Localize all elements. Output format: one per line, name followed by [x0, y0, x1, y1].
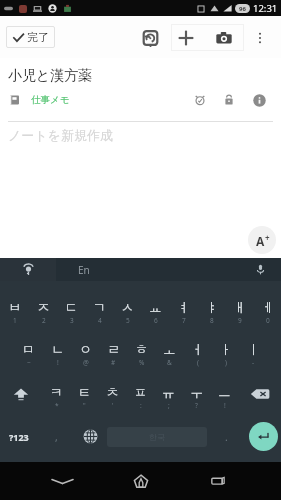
staticText: 2 — [42, 316, 46, 325]
button[interactable]: ㅗ — [155, 330, 183, 372]
staticText: ㅁ — [22, 341, 35, 357]
button[interactable]: ㅈ — [29, 288, 57, 330]
staticText: 5 — [126, 316, 130, 325]
staticText: + — [265, 232, 270, 243]
staticText: ㄷ — [65, 299, 78, 315]
staticText: ㅡ — [218, 384, 231, 400]
staticText: ㅐ — [233, 299, 246, 315]
staticText: 6 — [154, 316, 158, 325]
button[interactable]: ㅌ — [70, 372, 98, 415]
button[interactable]: Reminder — [191, 92, 209, 108]
button[interactable]: ㅛ — [141, 288, 169, 330]
staticText: 0 — [266, 316, 270, 325]
staticText: 仕事メモ — [31, 94, 70, 106]
button[interactable]: ㅐ — [225, 288, 253, 330]
staticText: % — [139, 358, 145, 367]
button[interactable]: ㅕ — [169, 288, 197, 330]
staticText: ㅈ — [37, 299, 50, 315]
staticText: ㅌ — [78, 384, 91, 400]
staticText: " — [83, 401, 86, 410]
staticText: ) — [225, 358, 227, 367]
button[interactable]: ㅂ — [0, 288, 29, 330]
staticText: ㅓ — [191, 341, 204, 357]
button[interactable]: Note info — [250, 92, 268, 108]
button[interactable]: En — [56, 258, 239, 281]
button[interactable]: Add attachment — [171, 17, 201, 59]
staticText: 9 — [238, 316, 242, 325]
staticText: ㄴ — [51, 341, 64, 357]
staticText: 4 — [98, 316, 102, 325]
staticText: * — [55, 401, 59, 410]
staticText: ㄱ — [93, 299, 106, 315]
button[interactable]: Home — [121, 462, 161, 500]
button[interactable]: ㅑ — [197, 288, 225, 330]
button[interactable]: ㅠ — [154, 372, 182, 415]
button[interactable]: ㄱ — [85, 288, 113, 330]
staticText: - — [252, 358, 255, 367]
button[interactable]: ㄷ — [57, 288, 85, 330]
button[interactable]: ㅓ — [183, 330, 211, 372]
button[interactable]: Recent apps — [198, 462, 238, 500]
staticText: ㅊ — [106, 384, 119, 400]
button[interactable]: Shift — [0, 372, 42, 415]
staticText: 7 — [182, 316, 186, 325]
staticText: @ — [83, 358, 89, 367]
button[interactable]: ㄴ — [43, 330, 71, 372]
staticText: ' — [112, 401, 114, 410]
staticText: ? — [195, 401, 198, 410]
button[interactable]: ㅣ — [239, 330, 267, 372]
staticText: 完了 — [27, 30, 49, 44]
staticText: ㅑ — [205, 299, 218, 315]
button[interactable]: ㅜ — [182, 372, 210, 415]
staticText: 한국 — [149, 432, 165, 442]
button[interactable]: More options — [245, 17, 275, 59]
button[interactable]: Take photo — [209, 17, 239, 59]
staticText: 12:31 — [253, 2, 278, 15]
button[interactable]: 仕事メモ — [10, 94, 70, 106]
button[interactable]: Hide keyboard — [42, 462, 82, 500]
staticText: 小児と漢方薬 — [8, 67, 93, 85]
button[interactable]: ㅇ — [71, 330, 99, 372]
staticText: ノートを新規作成 — [8, 127, 113, 143]
staticText: 1 — [13, 316, 17, 325]
button[interactable]: Change input language — [74, 415, 107, 458]
staticText: 8 — [210, 316, 214, 325]
staticText: 96 — [239, 5, 246, 13]
staticText: & — [167, 358, 172, 367]
staticText: ㅍ — [134, 384, 147, 400]
button[interactable]: ㅏ — [211, 330, 239, 372]
staticText: ㅗ — [163, 341, 176, 357]
button[interactable]: ㅍ — [126, 372, 154, 415]
staticText: ㅋ — [50, 384, 63, 400]
button[interactable]: Text formatting — [248, 226, 276, 254]
staticText: ㅂ — [8, 299, 21, 315]
button[interactable]: Sync note — [135, 17, 165, 59]
button[interactable]: ㅡ — [210, 372, 238, 415]
button[interactable]: 完了 — [6, 26, 55, 48]
button[interactable]: ㄹ — [99, 330, 127, 372]
button[interactable]: ㅊ — [98, 372, 126, 415]
button[interactable]: ㅅ — [113, 288, 141, 330]
button[interactable]: ㅎ — [127, 330, 155, 372]
staticText: ㅇ — [79, 341, 92, 357]
button[interactable]: Lock note — [220, 92, 238, 108]
button[interactable]: ㅋ — [42, 372, 70, 415]
button[interactable]: Keyboard settings — [0, 258, 56, 281]
button[interactable]: Voice input — [239, 258, 281, 281]
button[interactable]: Enter — [245, 415, 281, 458]
staticText: 3 — [70, 316, 74, 325]
staticText: A — [256, 233, 265, 249]
staticText: ! — [224, 401, 226, 410]
staticText: ㅕ — [177, 299, 190, 315]
staticText: ㅏ — [219, 341, 232, 357]
button[interactable]: ㅔ — [253, 288, 281, 330]
staticText: ㅅ — [121, 299, 134, 315]
button[interactable]: ㅁ — [14, 330, 43, 372]
button[interactable]: ?123 — [0, 415, 38, 458]
button[interactable]: Backspace — [238, 372, 281, 415]
staticText: ! — [57, 358, 59, 367]
staticText: ㅠ — [162, 384, 175, 400]
